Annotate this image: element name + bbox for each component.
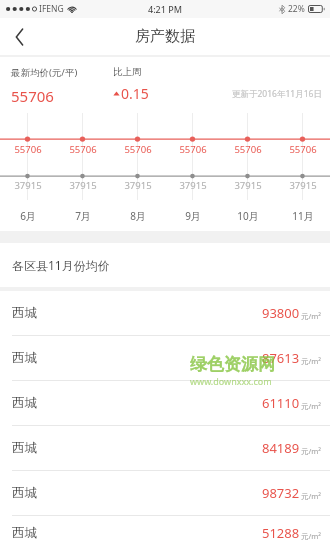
staticText: 55706 [124, 143, 152, 156]
staticText: 37915 [124, 179, 152, 192]
staticText: 37915 [69, 179, 97, 192]
staticText: 93800 [262, 304, 300, 322]
staticText: www.downxxx.com [190, 375, 272, 387]
staticText: 元/m² [301, 356, 321, 366]
staticText: 西城 [12, 440, 37, 456]
button[interactable]: 西城 [0, 335, 330, 380]
staticText: 55706 [14, 143, 42, 156]
staticText: 元/m² [301, 531, 321, 541]
staticText: 元/m² [301, 401, 321, 411]
staticText: 55706 [289, 143, 317, 156]
staticText: 各区县11月份均价 [12, 257, 110, 273]
staticText: 37915 [179, 179, 207, 192]
button[interactable]: Back [0, 18, 38, 55]
staticText: 元/m² [301, 311, 321, 321]
staticText: 37915 [14, 179, 42, 192]
staticText: 元/m² [301, 446, 321, 456]
staticText: 西城 [12, 305, 37, 321]
staticText: 西城 [12, 350, 37, 366]
staticText: 22% [288, 3, 305, 15]
staticText: 房产数据 [135, 27, 195, 46]
staticText: 61110 [262, 394, 300, 412]
staticText: 西城 [12, 525, 37, 541]
staticText: 绿色资源网 [190, 354, 275, 375]
staticText: 98732 [262, 484, 300, 502]
staticText: 55706 [179, 143, 207, 156]
staticText: 37915 [234, 179, 262, 192]
staticText: 元/m² [301, 491, 321, 501]
staticText: 11月 [292, 209, 314, 223]
staticText: 87613 [262, 349, 300, 367]
staticText: 55706 [234, 143, 262, 156]
staticText: 8月 [130, 209, 146, 223]
staticText: 6月 [20, 209, 36, 223]
button[interactable]: 西城 [0, 380, 330, 425]
staticText: 西城 [12, 395, 37, 411]
staticText: 最新均价(元/平) [11, 66, 78, 79]
staticText: 比上周 [113, 66, 142, 78]
staticText: 7月 [75, 209, 91, 223]
button[interactable]: 西城 [0, 470, 330, 515]
button[interactable]: 西城 [0, 291, 330, 335]
button[interactable]: 西城 [0, 425, 330, 470]
staticText: 4:21 PM [148, 3, 182, 15]
staticText: 10月 [237, 209, 259, 223]
staticText: 55706 [69, 143, 97, 156]
staticText: 55706 [11, 86, 54, 106]
staticText: 更新于2016年11月16日 [232, 88, 322, 100]
staticText: 51288 [262, 524, 300, 542]
staticText: IFENG [39, 3, 64, 15]
staticText: 9月 [185, 209, 201, 223]
button[interactable]: 西城 [0, 515, 330, 550]
staticText: 西城 [12, 485, 37, 501]
staticText: 84189 [262, 439, 300, 457]
staticText: 37915 [289, 179, 317, 192]
staticText: 0.15 [121, 84, 149, 103]
